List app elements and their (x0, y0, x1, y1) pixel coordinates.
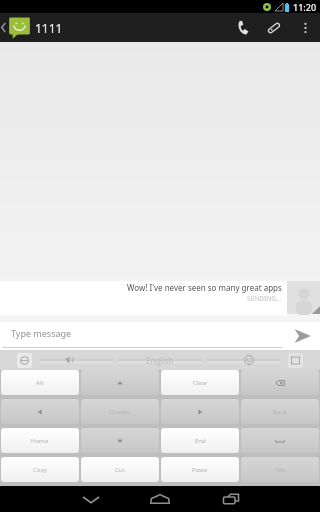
button[interactable]: Attach (258, 13, 290, 42)
staticText: 1111 (35, 20, 63, 36)
staticText: End (195, 437, 206, 445)
button[interactable]: 1111 (0, 13, 67, 42)
staticText: SENDING... (247, 294, 282, 303)
staticText: Copy (33, 466, 48, 474)
button[interactable]: Hide keyboard (75, 486, 107, 512)
staticText: Choose (109, 408, 131, 416)
button[interactable]: Tab (241, 457, 319, 482)
staticText: Type message (11, 327, 72, 339)
button[interactable]: Up (81, 370, 159, 395)
staticText: Alt (36, 379, 44, 387)
button[interactable]: Cut (81, 457, 159, 482)
button[interactable]: Alt (1, 370, 79, 395)
button[interactable]: Home (1, 428, 79, 453)
staticText: Home (31, 437, 49, 445)
staticText: Back (273, 408, 287, 416)
button[interactable]: Switch keyboard (17, 353, 32, 368)
button[interactable]: Call (228, 13, 258, 42)
button[interactable]: Back (241, 399, 319, 424)
button[interactable]: Home (144, 486, 176, 512)
staticText: Wow! I've never seen so many great apps (127, 282, 282, 293)
button[interactable]: Clear (161, 370, 239, 395)
button[interactable]: Right (161, 399, 239, 424)
staticText: Clear (193, 379, 208, 387)
staticText: English (146, 355, 174, 366)
button[interactable]: Copy (1, 457, 79, 482)
button[interactable]: More options (290, 13, 320, 42)
staticText: Paste (192, 466, 208, 474)
button[interactable]: Choose (81, 399, 159, 424)
button[interactable]: Send (284, 322, 320, 350)
button[interactable]: Down (81, 428, 159, 453)
button[interactable]: Left (1, 399, 79, 424)
staticText: 11:20 (293, 1, 317, 13)
button[interactable]: End (161, 428, 239, 453)
button[interactable]: Sound (63, 353, 77, 367)
button[interactable]: Paste (161, 457, 239, 482)
button[interactable]: Settings (288, 353, 303, 368)
button[interactable]: Backspace (241, 370, 319, 395)
button[interactable]: Emoji (242, 353, 256, 367)
staticText: Tab (275, 466, 285, 474)
staticText: Cut (115, 466, 125, 474)
button[interactable]: Space (241, 428, 319, 453)
button[interactable]: Recents (215, 486, 247, 512)
